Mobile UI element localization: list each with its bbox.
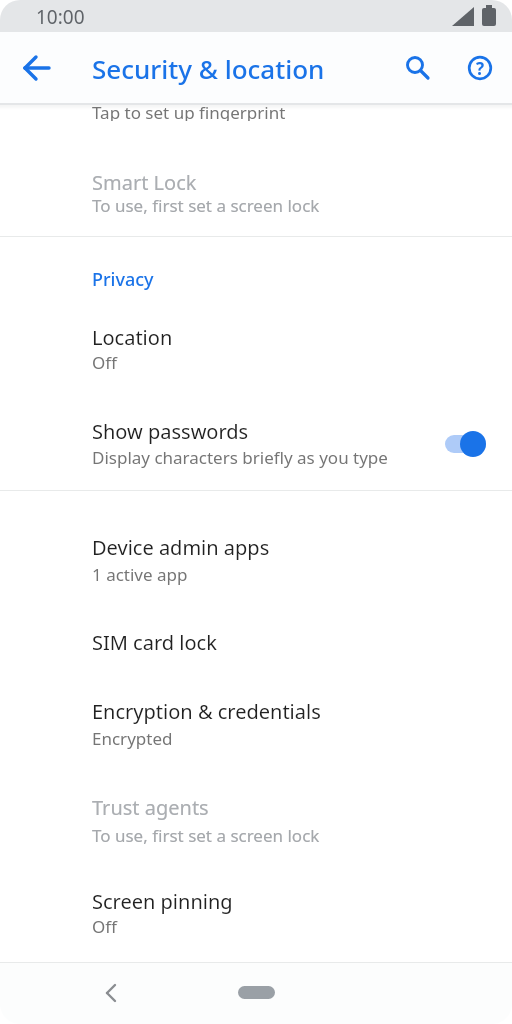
button[interactable] — [0, 620, 512, 670]
button[interactable] — [0, 410, 512, 480]
button[interactable] — [460, 431, 486, 457]
staticText: Security & location — [92, 51, 325, 86]
button[interactable] — [0, 160, 512, 226]
staticText: Display characters briefly as you type — [92, 446, 388, 469]
staticText: SIM card lock — [92, 629, 217, 656]
staticText: To use, first set a screen lock — [92, 824, 320, 847]
button[interactable] — [238, 986, 275, 999]
staticText: Smart Lock — [92, 169, 197, 196]
button[interactable] — [394, 44, 442, 92]
staticText: Screen pinning — [92, 888, 233, 915]
button[interactable]: Tap to set up fingerprint — [92, 101, 286, 121]
staticText: Location — [92, 324, 173, 351]
staticText: Encrypted — [92, 727, 173, 750]
button[interactable] — [0, 882, 512, 948]
staticText: Trust agents — [92, 794, 209, 821]
staticText: 1 active app — [92, 563, 188, 586]
staticText: Privacy — [92, 267, 154, 292]
staticText: 10:00 — [36, 4, 85, 30]
staticText: Device admin apps — [92, 534, 270, 561]
staticText: Off — [92, 351, 117, 374]
staticText: Tap to set up fingerprint — [92, 101, 286, 121]
button[interactable] — [13, 44, 61, 92]
button[interactable] — [0, 692, 512, 758]
staticText: Encryption & credentials — [92, 698, 321, 725]
button[interactable] — [0, 528, 512, 594]
button[interactable] — [0, 315, 512, 385]
button[interactable] — [87, 969, 135, 1017]
button[interactable]: ? — [456, 44, 504, 92]
staticText: Off — [92, 915, 117, 938]
staticText: Show passwords — [92, 418, 249, 445]
staticText: To use, first set a screen lock — [92, 194, 320, 217]
staticText: ? — [476, 57, 485, 80]
